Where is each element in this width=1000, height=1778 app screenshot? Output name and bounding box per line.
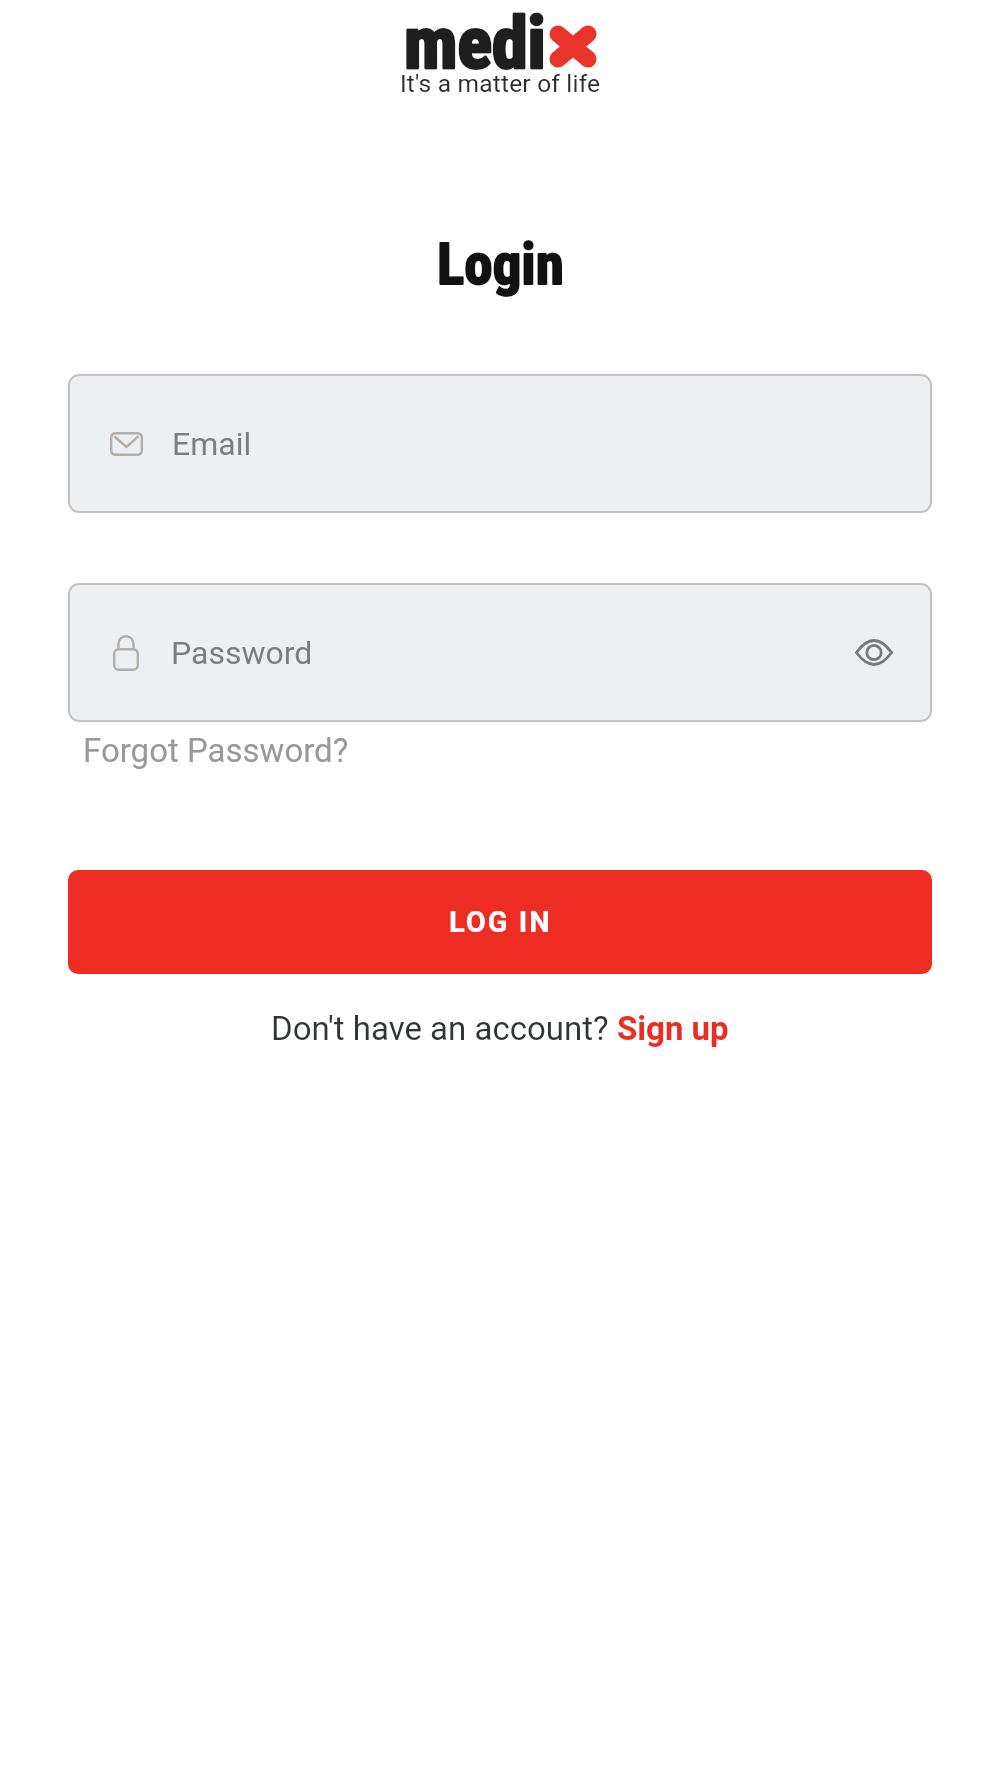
staticText: LOG IN [449, 905, 552, 939]
button[interactable] [855, 639, 893, 666]
button[interactable]: Email [68, 374, 932, 513]
button[interactable]: Sign up [617, 1009, 729, 1048]
button[interactable]: Forgot Password? [83, 731, 349, 770]
staticText: Login [437, 231, 564, 298]
button[interactable]: Password [68, 583, 932, 722]
staticText: It's a matter of life [400, 69, 601, 98]
staticText: medi [404, 1, 546, 85]
staticText: Forgot Password? [83, 731, 349, 770]
staticText: Login [437, 231, 564, 298]
staticText: Email [172, 425, 252, 463]
staticText: Don't have an account? [271, 1009, 617, 1048]
button[interactable]: LOG IN [68, 870, 932, 974]
staticText: medi [404, 1, 546, 85]
staticText: Sign up [617, 1009, 729, 1048]
staticText: Password [171, 634, 313, 672]
